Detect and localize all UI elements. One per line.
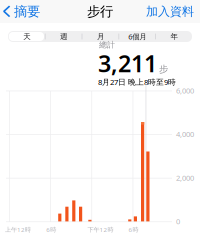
staticText: 月 xyxy=(97,32,104,41)
button[interactable]: 加入資料 xyxy=(146,0,200,23)
button[interactable]: 週 xyxy=(45,31,82,42)
staticText: 步 xyxy=(159,63,168,75)
button[interactable]: 6個月 xyxy=(118,31,155,42)
staticText: 下午12時 xyxy=(87,225,113,233)
button[interactable]: 摘要 xyxy=(0,0,40,23)
staticText: 年 xyxy=(170,32,177,41)
button[interactable]: 年 xyxy=(155,31,192,42)
staticText: 6時 xyxy=(129,225,139,233)
staticText: 0 xyxy=(176,216,180,226)
staticText: 上午12時 xyxy=(5,225,31,233)
staticText: 3,211 xyxy=(98,48,157,79)
staticText: 8月27日 晚上8時至9時 xyxy=(98,77,176,87)
staticText: 6,000 xyxy=(176,86,194,95)
staticText: 週 xyxy=(60,32,67,41)
button[interactable]: 天 xyxy=(8,31,45,42)
staticText: 天 xyxy=(23,32,30,41)
staticText: 加入資料 xyxy=(146,4,194,19)
staticText: 4,000 xyxy=(176,129,194,139)
staticText: 6個月 xyxy=(128,31,146,41)
staticText: 總計 xyxy=(99,40,115,50)
staticText: 步行 xyxy=(87,3,113,20)
staticText: 6時 xyxy=(46,225,56,233)
staticText: 2,000 xyxy=(176,173,194,183)
staticText: 摘要 xyxy=(14,3,40,20)
button[interactable]: 月 xyxy=(82,31,118,42)
